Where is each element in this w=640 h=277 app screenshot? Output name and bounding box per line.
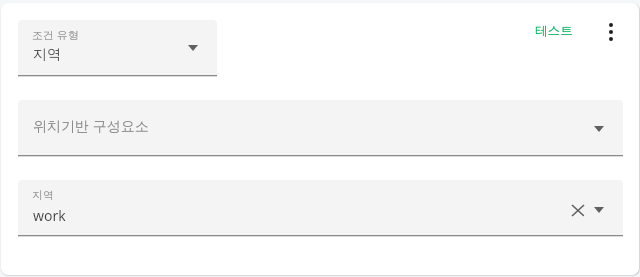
button[interactable]: Clear <box>560 196 586 222</box>
button[interactable]: More options <box>598 19 626 47</box>
staticText: 조건 유형 <box>32 27 79 42</box>
staticText: 지역 <box>32 188 54 202</box>
staticText: 테스트 <box>535 23 573 39</box>
staticText: 위치기반 구성요소 <box>33 116 149 135</box>
staticText: work <box>33 206 66 225</box>
button[interactable]: 위치기반 구성요소 <box>18 100 623 157</box>
button[interactable]: 테스트 <box>523 15 585 47</box>
button[interactable]: 조건 유형 <box>18 20 217 77</box>
button[interactable]: 지역 <box>18 180 623 237</box>
staticText: 지역 <box>33 46 61 64</box>
